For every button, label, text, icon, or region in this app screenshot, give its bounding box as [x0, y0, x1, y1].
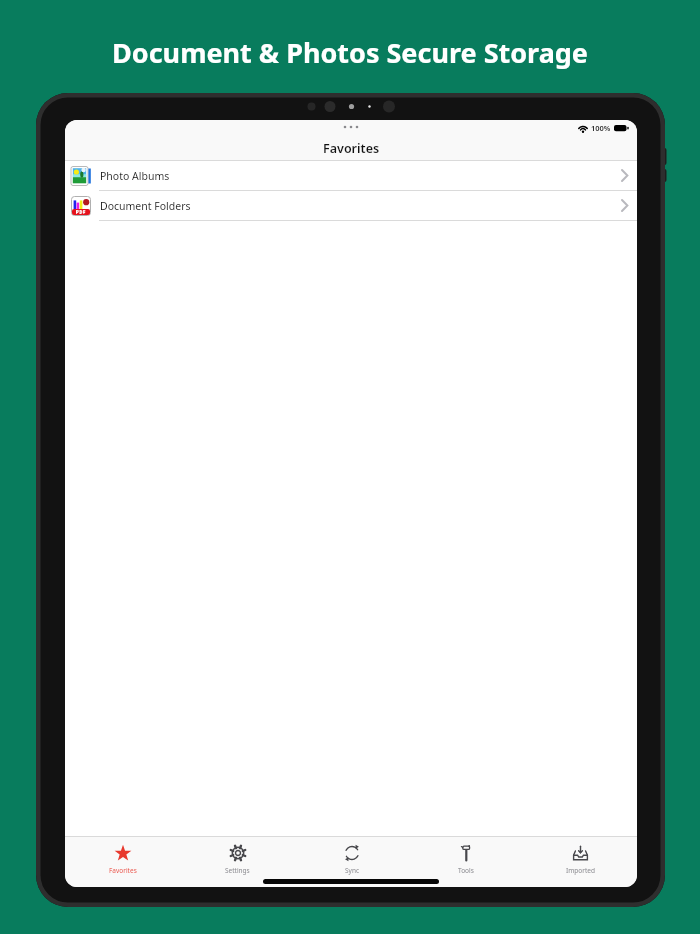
button[interactable]: Photo Albums: [65, 161, 637, 190]
button[interactable]: Imported: [523, 837, 637, 887]
staticText: Tools: [458, 866, 474, 875]
staticText: Sync: [345, 866, 360, 875]
staticText: Document Folders: [100, 199, 191, 213]
button[interactable]: Sync: [295, 837, 409, 887]
staticText: Favorites: [109, 866, 137, 875]
staticText: 100%: [591, 123, 611, 133]
button[interactable]: Favorites: [65, 837, 180, 887]
staticText: Document & Photos Secure Storage: [112, 34, 588, 71]
staticText: Favorites: [323, 140, 380, 157]
staticText: Photo Albums: [100, 169, 170, 183]
button[interactable]: Document Folders: [65, 191, 637, 220]
button[interactable]: Tools: [409, 837, 523, 887]
staticText: Imported: [566, 866, 595, 875]
button[interactable]: Settings: [180, 837, 295, 887]
staticText: Settings: [225, 866, 250, 875]
